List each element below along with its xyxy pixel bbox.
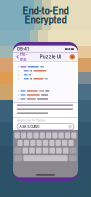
button[interactable]: Ask Scuttle bbox=[17, 123, 74, 130]
staticText: Home bbox=[20, 52, 28, 62]
staticText: Ask Scuttle bbox=[19, 124, 39, 129]
staticText: 09:41 bbox=[17, 46, 29, 52]
button[interactable]: Profile bbox=[70, 54, 75, 59]
staticText: End-to-End bbox=[22, 3, 68, 18]
staticText: Replying to Home bbox=[17, 118, 45, 122]
staticText: Encrypted bbox=[24, 12, 66, 27]
staticText: Puzzle UI bbox=[40, 54, 61, 60]
button[interactable]: Home bbox=[16, 53, 31, 60]
